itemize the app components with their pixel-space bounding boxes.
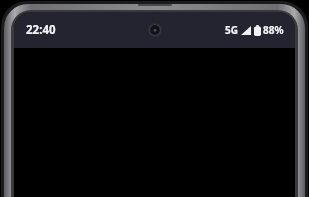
button[interactable]: 22:40: [26, 22, 56, 38]
other: Signal strength: [241, 26, 251, 35]
staticText: 22:40: [26, 22, 56, 38]
other: Front camera: [148, 23, 162, 37]
staticText: 5G: [225, 23, 238, 37]
other: Battery 88 percent: [254, 25, 261, 36]
staticText: 88%: [263, 23, 284, 37]
button[interactable]: Network, signal and battery status: [225, 23, 284, 37]
